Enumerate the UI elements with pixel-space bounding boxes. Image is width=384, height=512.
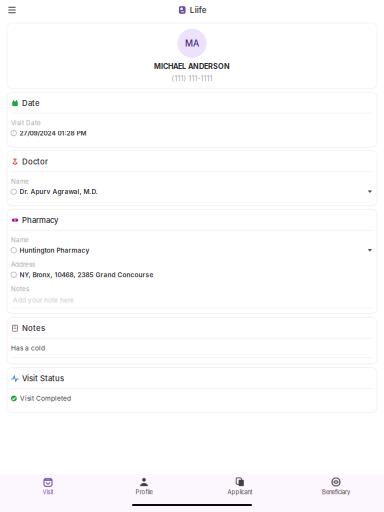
staticText: Date (22, 98, 40, 108)
staticText: Dr. Apurv Agrawal, M.D. (20, 188, 98, 196)
staticText: Pharmacy (22, 215, 58, 225)
button[interactable]: Profile (96, 475, 192, 498)
staticText: Profile (135, 488, 152, 496)
staticText: MA (185, 38, 199, 49)
staticText: Doctor (22, 157, 48, 166)
staticText: Name (11, 236, 29, 244)
staticText: Visit (42, 488, 53, 496)
staticText: Liife (190, 5, 207, 15)
staticText: Beneficiary (322, 488, 350, 496)
staticText: Name (11, 178, 29, 185)
staticText: Address (11, 261, 35, 268)
button[interactable]: Dr. Apurv Agrawal, M.D. (11, 188, 372, 196)
staticText: Add your note here (13, 296, 74, 304)
staticText: NY, Bronx, 10468, 2385 Grand Concourse (20, 271, 154, 279)
staticText: Applicant (227, 488, 252, 496)
button[interactable]: Menu (4, 1, 20, 19)
staticText: MICHAEL ANDERSON (154, 62, 230, 71)
staticText: Huntington Pharmacy (20, 246, 90, 254)
staticText: Visit Completed (20, 394, 71, 402)
button[interactable]: Applicant (192, 475, 288, 498)
staticText: (111) 111-1111 (171, 74, 212, 83)
staticText: Notes (22, 323, 45, 333)
staticText: Visit Status (22, 374, 64, 383)
button[interactable]: Add your note here (11, 296, 372, 308)
staticText: 27/09/2024 01:28 PM (20, 129, 87, 137)
button[interactable]: Visit (0, 475, 96, 498)
staticText: Visit Date (11, 119, 41, 127)
button[interactable]: Huntington Pharmacy (11, 246, 372, 254)
button[interactable]: Beneficiary (288, 475, 384, 498)
staticText: Notes (11, 285, 29, 293)
staticText: Has a cold (11, 344, 45, 352)
